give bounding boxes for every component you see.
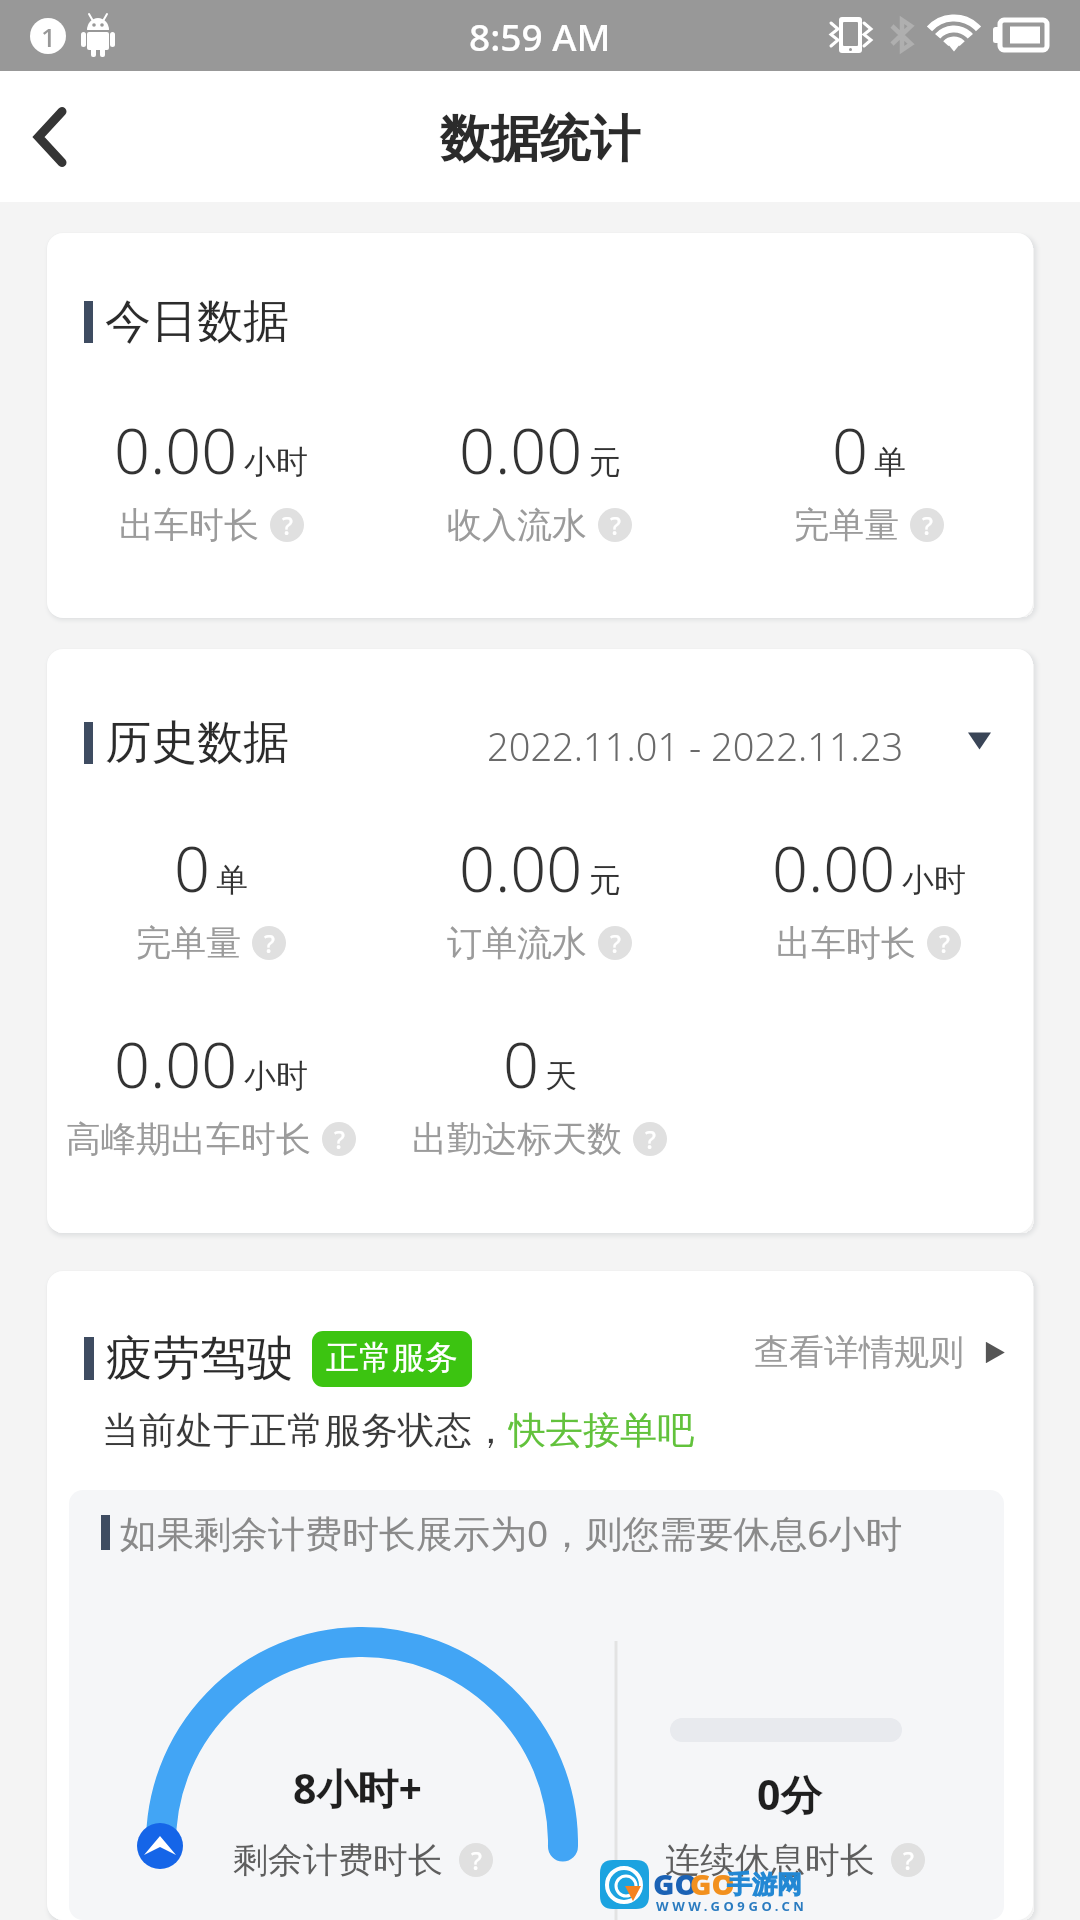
staticText: 0.00 — [459, 825, 583, 911]
button[interactable]: Back — [0, 71, 110, 202]
staticText: WWW.GO9GO.CN — [656, 1897, 808, 1915]
staticText: 收入流水 — [447, 503, 587, 547]
button[interactable]: 0.00 — [47, 1021, 375, 1161]
button[interactable]: 0 — [375, 1021, 704, 1161]
staticText: 0.00 — [114, 407, 238, 493]
staticText: ? — [264, 927, 275, 960]
staticText: 查看详情规则 — [754, 1330, 964, 1374]
staticText: 8小时+ — [293, 1760, 422, 1816]
button[interactable]: 0.00 — [375, 825, 704, 965]
staticText: 历史数据 — [105, 714, 289, 772]
staticText: GO — [690, 1864, 735, 1903]
staticText: 如果剩余计费时长展示为0，则您需要休息6小时 — [120, 1507, 903, 1558]
staticText: 0.00 — [114, 1021, 238, 1107]
staticText: 0 — [832, 407, 868, 493]
staticText: 1 — [41, 19, 56, 54]
staticText: 连续休息时长 — [665, 1838, 875, 1882]
staticText: 0.00 — [772, 825, 896, 911]
button[interactable]: Help — [910, 508, 944, 542]
staticText: 疲劳驾驶 — [106, 1329, 294, 1388]
staticText: 高峰期出车时长 — [66, 1117, 311, 1161]
staticText: 8:59 AM — [469, 11, 611, 61]
staticText: 出勤达标天数 — [412, 1117, 622, 1161]
button[interactable]: 0.00 — [375, 407, 704, 547]
staticText: 元 — [589, 860, 621, 900]
staticText: 小时 — [902, 860, 966, 900]
button[interactable]: 查看详情规则 — [754, 1329, 1008, 1375]
staticText: 2022.11.01 - 2022.11.23 — [487, 720, 904, 762]
staticText: 小时 — [244, 442, 308, 482]
staticText: 天 — [545, 1056, 577, 1096]
staticText: 完单量 — [136, 921, 241, 965]
button[interactable]: Help — [252, 926, 286, 960]
staticText: 出车时长 — [119, 503, 259, 547]
staticText: ? — [922, 509, 933, 542]
staticText: 单 — [216, 860, 248, 900]
staticText: 订单流水 — [447, 921, 587, 965]
button[interactable]: 0.00 — [47, 407, 375, 547]
button[interactable]: Help — [633, 1122, 667, 1156]
staticText: ? — [939, 927, 950, 960]
staticText: ? — [610, 927, 621, 960]
staticText: 今日数据 — [105, 293, 289, 351]
staticText: 数据统计 — [440, 108, 640, 171]
staticText: 0.00 — [459, 407, 583, 493]
staticText: GO — [653, 1864, 698, 1903]
staticText: 正常服务 — [326, 1337, 458, 1379]
staticText: ? — [903, 1844, 914, 1877]
button[interactable]: Help — [270, 508, 304, 542]
staticText: 剩余计费时长 — [233, 1838, 443, 1882]
button[interactable]: 0 — [47, 825, 375, 965]
button[interactable]: Select date range — [487, 720, 991, 762]
button[interactable]: 0 — [704, 407, 1033, 547]
staticText: 完单量 — [794, 503, 899, 547]
button[interactable]: Help — [598, 508, 632, 542]
button[interactable]: 0.00 — [704, 825, 1033, 965]
staticText: 元 — [589, 442, 621, 482]
staticText: 快去接单吧 — [509, 1407, 694, 1454]
staticText: ? — [282, 509, 293, 542]
staticText: ? — [334, 1123, 345, 1156]
staticText: ? — [471, 1844, 482, 1877]
staticText: ? — [610, 509, 621, 542]
button[interactable]: Help — [322, 1122, 356, 1156]
staticText: 手游网 — [727, 1869, 802, 1900]
staticText: 出车时长 — [776, 921, 916, 965]
staticText: 单 — [874, 442, 906, 482]
staticText: 0 — [503, 1021, 539, 1107]
staticText: 小时 — [244, 1056, 308, 1096]
button[interactable]: Help — [459, 1843, 493, 1877]
staticText: 0分 — [757, 1766, 822, 1822]
button[interactable]: Help — [598, 926, 632, 960]
staticText: ? — [645, 1123, 656, 1156]
staticText: 0 — [174, 825, 210, 911]
button[interactable]: Help — [891, 1843, 925, 1877]
button[interactable]: Help — [927, 926, 961, 960]
button[interactable]: 正常服务 — [312, 1331, 472, 1387]
staticText: 当前处于正常服务状态， — [102, 1407, 509, 1454]
